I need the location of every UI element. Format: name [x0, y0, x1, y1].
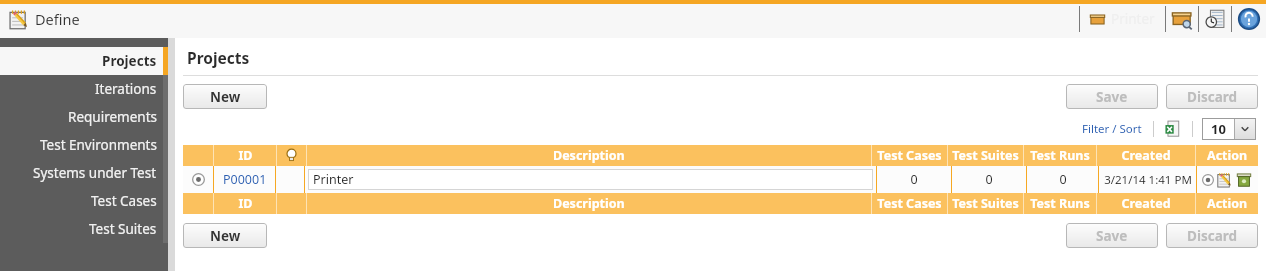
staticText: Iterations: [95, 80, 157, 98]
staticText: Test Runs: [1030, 195, 1090, 212]
staticText: Test Suites: [89, 220, 157, 238]
staticText: Test Suites: [952, 195, 1019, 212]
button[interactable]: Help: [1232, 0, 1266, 38]
button[interactable]: Export to Excel: [1163, 119, 1183, 139]
staticText: ID: [238, 147, 253, 164]
button[interactable]: Test Cases: [0, 187, 168, 215]
button[interactable]: New: [183, 223, 267, 248]
staticText: New: [210, 88, 241, 106]
button[interactable]: Edit project: [1217, 172, 1233, 188]
button[interactable]: History: [1199, 0, 1231, 38]
button[interactable]: Iterations: [0, 75, 168, 103]
staticText: Test Cases: [877, 147, 942, 164]
button[interactable]: Printer: [1090, 0, 1155, 38]
button[interactable]: Discard: [1166, 223, 1258, 248]
staticText: Projects: [187, 47, 250, 68]
staticText: 10: [1211, 120, 1226, 138]
button[interactable]: Define: [0, 0, 1266, 38]
staticText: Test Runs: [1030, 147, 1090, 164]
button[interactable]: Systems under Test: [0, 159, 168, 187]
staticText: 0: [1059, 171, 1067, 188]
button[interactable]: Test Suites: [0, 215, 168, 243]
staticText: Description: [553, 147, 625, 164]
button[interactable]: Requirements: [0, 103, 168, 131]
staticText: Discard: [1187, 227, 1238, 245]
staticText: Projects: [102, 52, 157, 70]
button[interactable]: Save: [1066, 223, 1158, 248]
staticText: Discard: [1187, 88, 1238, 106]
staticText: Test Cases: [877, 195, 942, 212]
staticText: Requirements: [68, 108, 157, 126]
staticText: Systems under Test: [33, 164, 157, 182]
staticText: Printer: [313, 171, 354, 188]
staticText: Filter / Sort: [1082, 121, 1142, 137]
staticText: 3/21/14 1:41 PM: [1104, 172, 1192, 188]
staticText: Save: [1096, 227, 1128, 245]
staticText: Created: [1121, 195, 1171, 212]
staticText: Define: [35, 9, 80, 29]
button[interactable]: New: [183, 84, 267, 109]
staticText: Save: [1096, 88, 1128, 106]
staticText: Description: [553, 195, 625, 212]
button[interactable]: Projects: [0, 47, 168, 75]
staticText: Test Environments: [40, 136, 157, 154]
staticText: Action: [1207, 195, 1248, 212]
button[interactable]: Save: [1066, 84, 1158, 109]
staticText: Test Suites: [952, 147, 1019, 164]
staticText: New: [210, 227, 241, 245]
staticText: Created: [1121, 147, 1171, 164]
staticText: P00001: [223, 171, 267, 188]
button[interactable]: Test Environments: [0, 131, 168, 159]
button[interactable]: Filter / Sort: [1080, 119, 1144, 139]
button[interactable]: Select system under test: [1166, 0, 1198, 38]
staticText: 0: [910, 171, 918, 188]
button[interactable]: P00001: [183, 166, 1258, 193]
button[interactable]: Select project row: [1202, 174, 1214, 186]
staticText: ID: [238, 195, 253, 212]
button[interactable]: Delete project: [1236, 172, 1252, 188]
button[interactable]: Discard: [1166, 84, 1258, 109]
staticText: Action: [1207, 147, 1248, 164]
button[interactable]: 10: [1202, 118, 1256, 140]
staticText: 0: [985, 171, 993, 188]
staticText: Test Cases: [91, 192, 157, 210]
